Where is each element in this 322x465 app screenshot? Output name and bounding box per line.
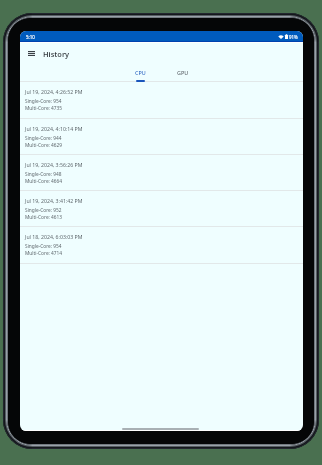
staticText: Multi-Core: 4613 (25, 214, 63, 221)
staticText: Jul 18, 2024, 6:03:03 PM (25, 233, 83, 240)
button[interactable]: CPU (127, 63, 153, 83)
staticText: Jul 19, 2024, 4:26:52 PM (25, 88, 83, 95)
staticText: Multi-Core: 4714 (25, 250, 63, 257)
staticText: CPU (135, 69, 146, 76)
staticText: 91% (289, 34, 298, 40)
staticText: History (43, 49, 70, 59)
staticText: Jul 19, 2024, 3:41:42 PM (25, 197, 83, 204)
button[interactable]: Jul 19, 2024, 3:41:42 PM (20, 190, 303, 226)
button[interactable]: Open navigation menu (23, 45, 40, 62)
staticText: Single-Core: 954 (25, 243, 62, 250)
staticText: Jul 19, 2024, 3:56:26 PM (25, 161, 83, 168)
staticText: 5:10 (26, 34, 35, 40)
button[interactable]: Jul 19, 2024, 3:56:26 PM (20, 154, 303, 190)
staticText: Multi-Core: 4735 (25, 105, 63, 112)
button[interactable]: Jul 19, 2024, 4:26:52 PM (20, 81, 303, 118)
staticText: Multi-Core: 4629 (25, 142, 63, 149)
staticText: Single-Core: 952 (25, 207, 62, 214)
button[interactable]: GPU (170, 63, 196, 83)
staticText: Jul 19, 2024, 4:10:14 PM (25, 125, 83, 132)
staticText: GPU (177, 69, 189, 76)
button[interactable]: Jul 19, 2024, 4:10:14 PM (20, 118, 303, 154)
staticText: Single-Core: 954 (25, 98, 62, 105)
button[interactable]: Jul 18, 2024, 6:03:03 PM (20, 226, 303, 262)
staticText: Single-Core: 948 (25, 171, 62, 178)
staticText: Multi-Core: 4664 (25, 178, 63, 185)
staticText: Single-Core: 944 (25, 135, 62, 142)
